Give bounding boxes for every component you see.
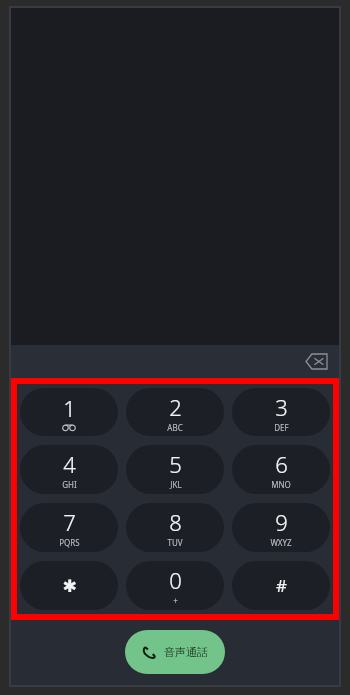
staticText: 0 [169, 565, 182, 595]
staticText: 2 [169, 392, 182, 422]
staticText: 4 [63, 449, 76, 479]
button[interactable]: 7 [20, 503, 118, 552]
staticText: JKL [170, 479, 182, 490]
staticText: 5 [169, 449, 182, 479]
button[interactable]: # [232, 561, 330, 610]
staticText: TUV [167, 537, 183, 548]
button[interactable]: 5 [126, 445, 224, 494]
staticText: DEF [274, 422, 289, 433]
button[interactable]: 4 [20, 445, 118, 494]
staticText: 7 [63, 507, 76, 537]
button[interactable]: 1 [20, 388, 118, 436]
button[interactable]: 6 [232, 445, 330, 494]
staticText: 音声通話 [164, 645, 208, 659]
staticText: GHI [62, 479, 77, 490]
staticText: 6 [275, 449, 288, 479]
staticText: PQRS [59, 537, 80, 548]
staticText: 8 [169, 507, 182, 537]
staticText: 1 [63, 393, 76, 423]
button[interactable]: 2 [126, 388, 224, 436]
button[interactable]: 8 [126, 503, 224, 552]
staticText: # [276, 574, 287, 597]
staticText: 3 [275, 392, 288, 422]
button[interactable]: 音声通話 [125, 630, 225, 674]
staticText: 9 [275, 507, 288, 537]
button[interactable]: Backspace [299, 345, 333, 378]
staticText: MNO [271, 479, 291, 490]
staticText: + [173, 595, 178, 606]
button[interactable]: 0 [126, 561, 224, 610]
button[interactable]: 3 [232, 388, 330, 436]
staticText: ✱ [62, 576, 77, 596]
staticText: WXYZ [270, 537, 292, 548]
button[interactable]: 9 [232, 503, 330, 552]
staticText: ABC [167, 422, 183, 433]
button[interactable]: ✱ [20, 561, 118, 610]
